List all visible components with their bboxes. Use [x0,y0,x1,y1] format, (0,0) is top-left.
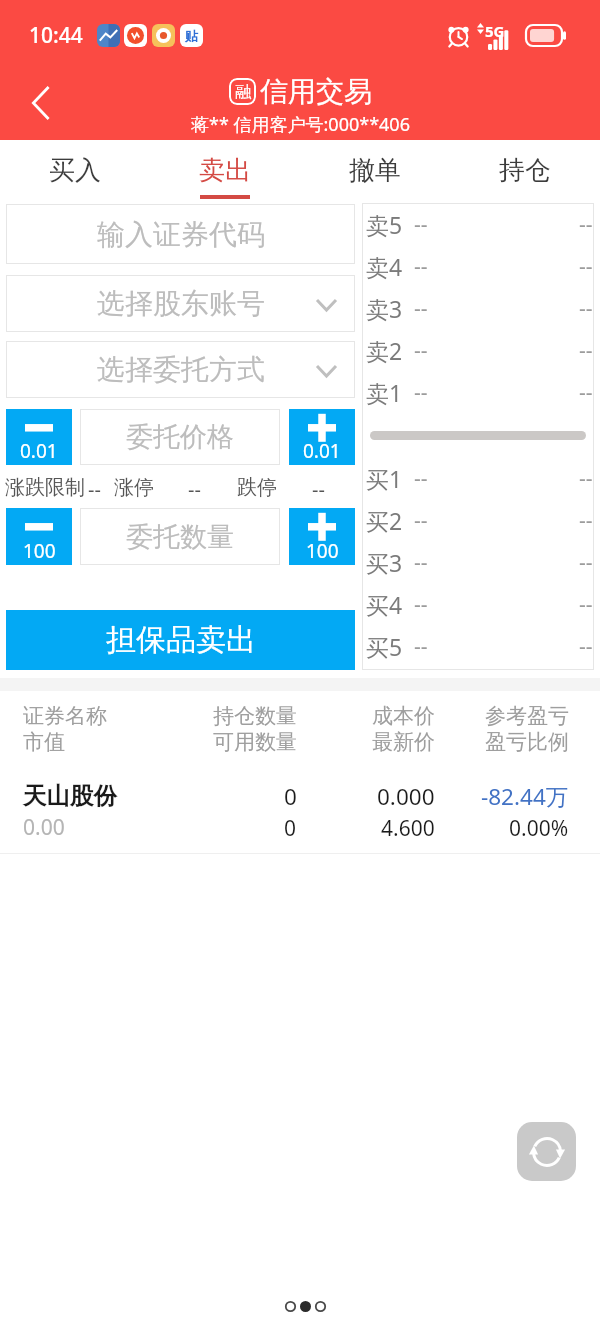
button[interactable]: 选择委托方式 [6,341,355,398]
staticText: -- [579,378,593,407]
staticText: 0 [284,781,297,812]
button[interactable]: Decrease [6,409,72,465]
staticText: 跌停 [237,475,277,500]
staticText: 买5 [366,631,403,662]
staticText: 贴 [185,28,198,44]
button[interactable]: 买2 [366,499,593,541]
staticText: 卖5 [366,209,403,240]
staticText: 卖4 [366,251,403,282]
staticText: 卖2 [366,335,403,366]
staticText: 10:44 [29,21,83,50]
staticText: 买1 [366,463,403,494]
staticText: 证券名称 [23,703,107,729]
staticText: 成本价 [372,703,435,729]
button[interactable]: 买5 [366,625,593,667]
staticText: -- [579,336,593,365]
staticText: 最新价 [372,729,435,755]
staticText: -- [579,294,593,323]
staticText: -- [579,252,593,281]
button[interactable]: 担保品卖出 [6,610,355,670]
button[interactable]: Increase [289,508,355,565]
button[interactable]: 卖5 [366,203,593,245]
staticText: -- [88,476,101,503]
staticText: -- [312,476,325,503]
staticText: 0.000 [377,781,435,812]
button[interactable]: 买4 [366,583,593,625]
staticText: 担保品卖出 [106,621,256,659]
staticText: 100 [23,538,56,564]
staticText: 参考盈亏 [485,703,569,729]
staticText: -- [414,548,428,577]
button[interactable]: 买3 [366,541,593,583]
button[interactable]: 买入 [0,140,150,200]
staticText: -- [414,590,428,619]
staticText: -- [414,294,428,323]
staticText: 融 [235,82,251,102]
staticText: 买入 [49,154,101,187]
staticText: -- [414,506,428,535]
staticText: -82.44万 [481,781,569,812]
button[interactable]: 卖4 [366,245,593,287]
staticText: 持仓 [499,154,551,187]
staticText: -- [188,476,201,503]
button[interactable]: 买1 [366,457,593,499]
button[interactable]: Increase [289,409,355,465]
staticText: 输入证券代码 [97,217,265,252]
staticText: 市值 [23,729,65,755]
button[interactable]: 卖3 [366,287,593,329]
button[interactable]: 选择股东账号 [6,275,355,332]
staticText: 可用数量 [213,729,297,755]
staticText: 4.600 [381,814,435,843]
staticText: 涨跌限制 [5,475,85,500]
staticText: 蒋** 信用客户号:000**406 [191,112,410,137]
staticText: -- [579,548,593,577]
staticText: 卖1 [366,377,403,408]
staticText: 卖3 [366,293,403,324]
staticText: 0.00 [23,813,65,842]
button[interactable]: 输入证券代码 [6,204,355,264]
button[interactable]: 撤单 [300,140,450,200]
staticText: 买2 [366,505,403,536]
staticText: 天山股份 [23,781,117,811]
staticText: -- [414,210,428,239]
staticText: 委托价格 [126,420,234,454]
staticText: -- [414,378,428,407]
staticText: 持仓数量 [213,703,297,729]
button[interactable]: 委托价格 [80,409,280,465]
button[interactable]: Refresh [517,1122,576,1181]
staticText: -- [579,506,593,535]
button[interactable]: 卖2 [366,329,593,371]
staticText: 信用交易 [260,74,372,109]
button[interactable]: 卖1 [366,371,593,413]
staticText: -- [579,632,593,661]
staticText: 卖出 [199,154,251,187]
staticText: 0.01 [20,438,58,464]
staticText: 买3 [366,547,403,578]
staticText: 0 [284,814,297,843]
button[interactable]: 天山股份 [23,781,569,843]
staticText: 买4 [366,589,403,620]
staticText: -- [579,464,593,493]
staticText: -- [414,252,428,281]
button[interactable]: Decrease [6,508,72,565]
button[interactable]: Back [16,77,64,125]
staticText: -- [414,336,428,365]
staticText: 0.00% [509,814,569,843]
staticText: 涨停 [114,475,154,500]
staticText: 选择委托方式 [97,352,265,387]
staticText: 盈亏比例 [485,729,569,755]
staticText: 撤单 [349,154,401,187]
staticText: 100 [306,538,339,564]
staticText: -- [579,590,593,619]
button[interactable]: 委托数量 [80,508,280,565]
staticText: -- [414,464,428,493]
button[interactable]: 卖出 [150,140,300,200]
staticText: 5G [485,21,505,41]
staticText: -- [579,210,593,239]
staticText: -- [414,632,428,661]
button[interactable]: 持仓 [450,140,600,200]
staticText: 委托数量 [126,520,234,554]
staticText: 选择股东账号 [97,286,265,321]
staticText: 0.01 [303,438,341,464]
